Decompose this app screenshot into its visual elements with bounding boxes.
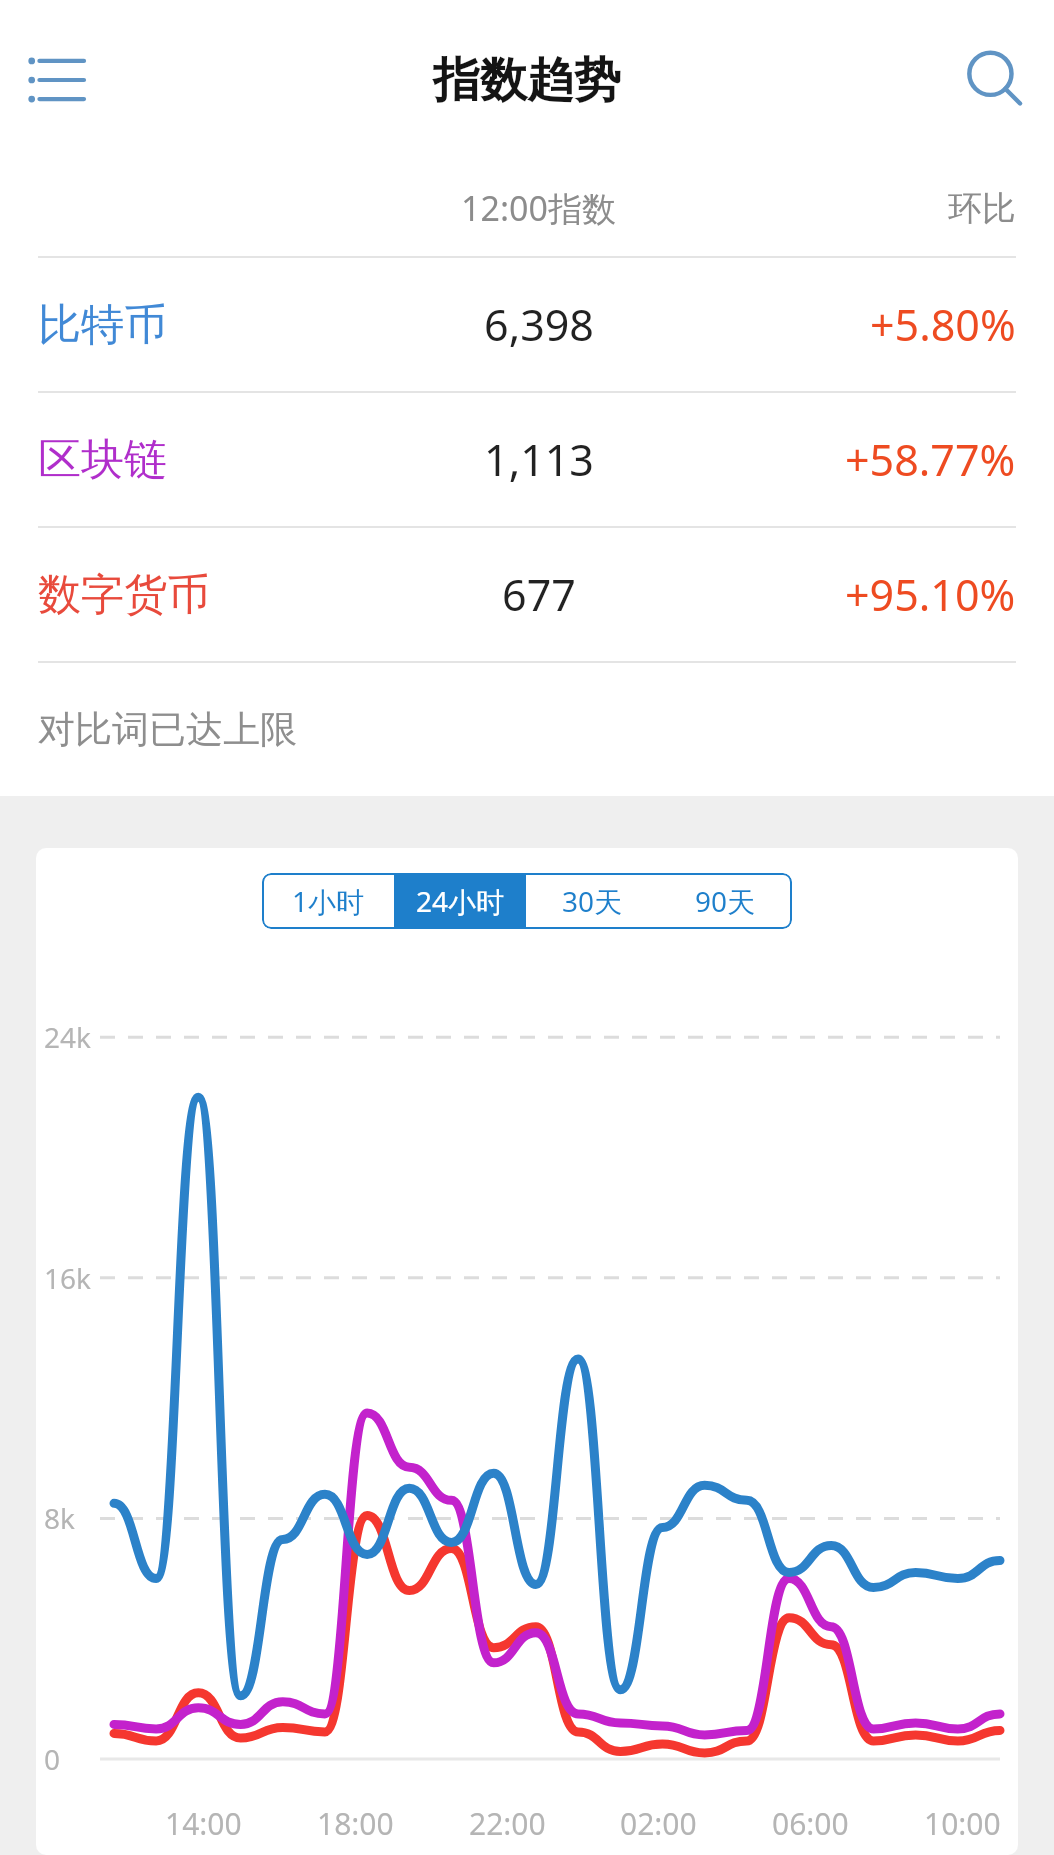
staticText: +58.77% xyxy=(845,430,1016,489)
staticText: 区块链 xyxy=(38,433,167,487)
button[interactable]: 24小时 xyxy=(394,873,526,929)
staticText: 6,398 xyxy=(484,295,594,354)
staticText: 16k xyxy=(44,1259,91,1297)
staticText: 02:00 xyxy=(620,1803,697,1844)
staticText: 30天 xyxy=(562,882,623,920)
staticText: +5.80% xyxy=(870,295,1016,354)
button[interactable]: 30天 xyxy=(526,873,659,929)
staticText: 90天 xyxy=(695,882,756,920)
staticText: 677 xyxy=(502,565,576,624)
staticText: 14:00 xyxy=(165,1803,242,1844)
button[interactable]: 1小时 xyxy=(262,873,394,929)
staticText: 24k xyxy=(44,1018,91,1056)
button[interactable]: 数字货币 xyxy=(0,528,1054,661)
button[interactable]: Search xyxy=(948,32,1044,128)
staticText: 0 xyxy=(44,1740,61,1778)
staticText: 1,113 xyxy=(484,430,594,489)
staticText: 1小时 xyxy=(292,882,365,920)
staticText: 10:00 xyxy=(924,1803,1001,1844)
staticText: 数字货币 xyxy=(38,568,210,622)
button[interactable]: 90天 xyxy=(659,873,792,929)
staticText: 06:00 xyxy=(772,1803,849,1844)
button[interactable]: 比特币 xyxy=(0,258,1054,391)
staticText: 24小时 xyxy=(416,882,505,920)
staticText: 8k xyxy=(44,1499,75,1537)
staticText: 对比词已达上限 xyxy=(38,706,297,753)
staticText: 环比 xyxy=(948,187,1016,230)
button[interactable]: Menu xyxy=(14,38,98,122)
staticText: 12:00指数 xyxy=(461,185,616,231)
staticText: +95.10% xyxy=(845,565,1016,624)
staticText: 22:00 xyxy=(469,1803,546,1844)
staticText: 18:00 xyxy=(317,1803,394,1844)
button[interactable]: 区块链 xyxy=(0,393,1054,526)
staticText: 指数趋势 xyxy=(433,51,621,110)
staticText: 比特币 xyxy=(38,298,167,352)
